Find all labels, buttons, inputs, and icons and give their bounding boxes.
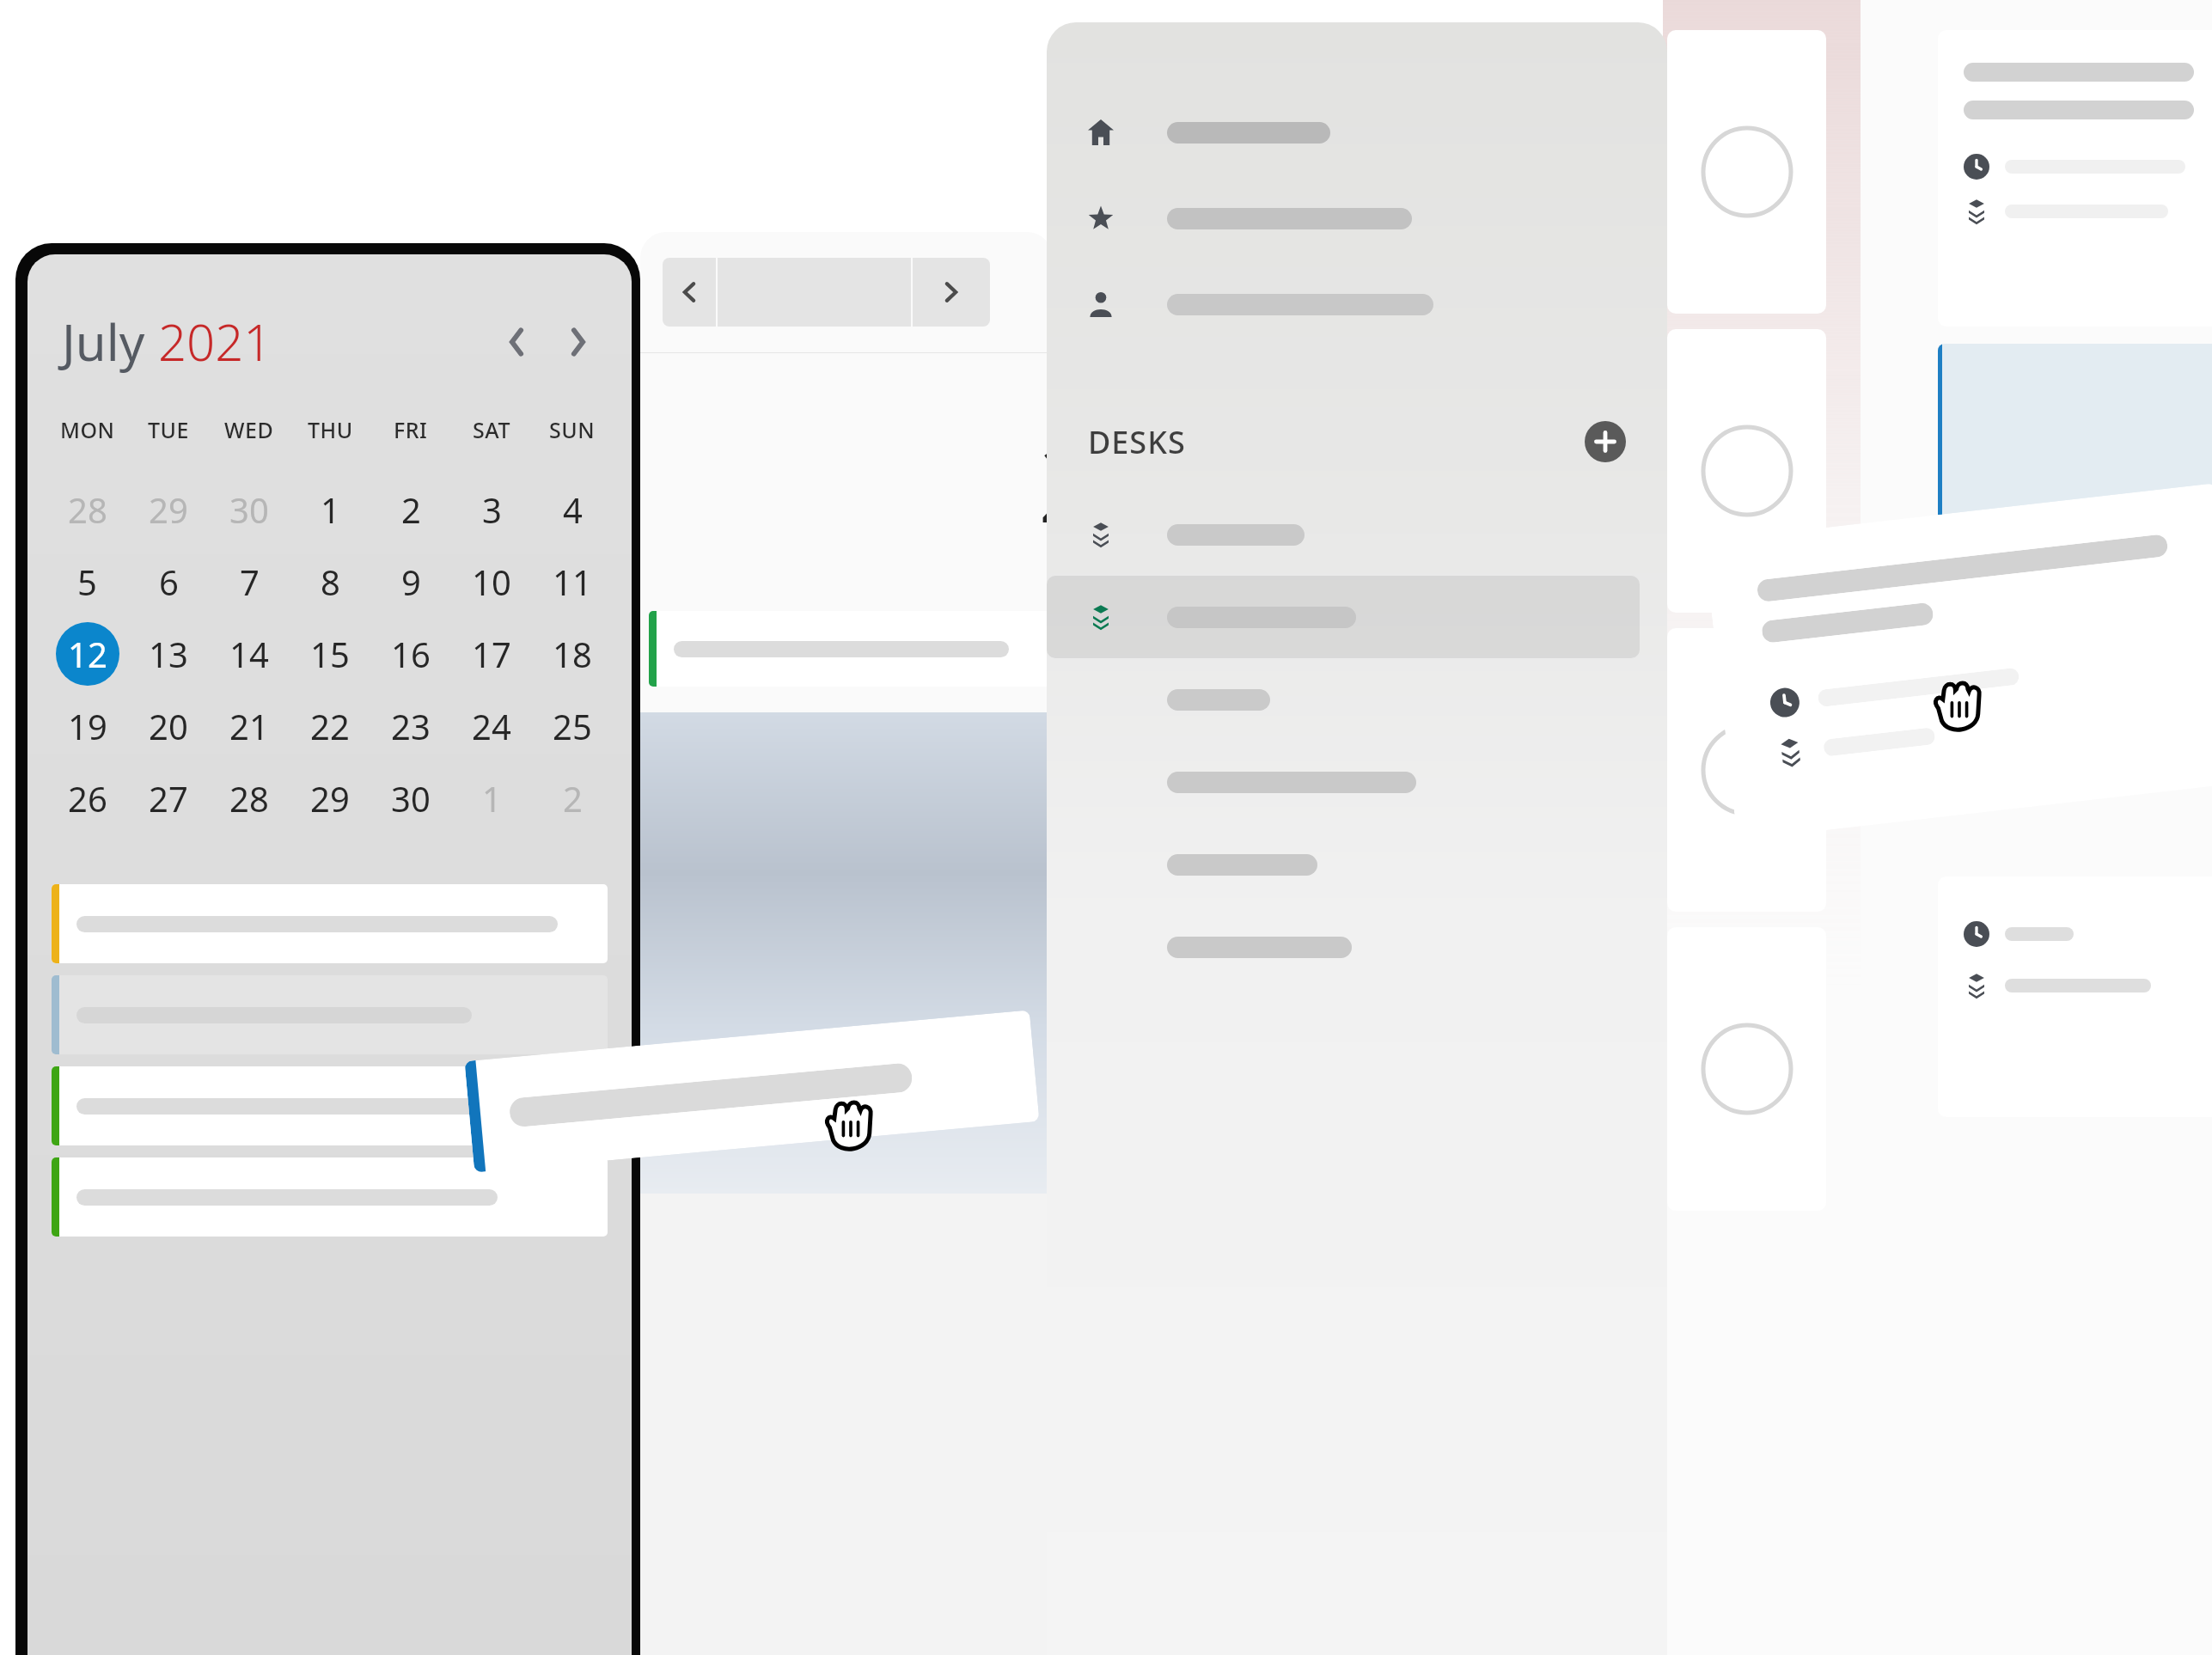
button[interactable]: 25 — [532, 690, 613, 762]
staticText: 23 — [391, 703, 431, 749]
button[interactable]: 6 — [128, 546, 209, 618]
staticText: 7 — [240, 559, 260, 605]
staticText: TUE — [148, 415, 189, 444]
button[interactable] — [1703, 483, 2212, 840]
staticText: 5 — [77, 559, 97, 605]
button[interactable]: 8 — [290, 546, 370, 618]
button[interactable]: Profile — [1047, 261, 1667, 347]
button[interactable]: Home — [1047, 89, 1667, 175]
staticText: 2021 — [158, 308, 272, 376]
staticText: 25 — [553, 703, 592, 749]
staticText: July — [62, 308, 158, 376]
button[interactable] — [1938, 344, 2212, 602]
button[interactable] — [1047, 741, 1667, 823]
staticText: 28 — [68, 486, 107, 533]
button[interactable]: Add desk — [1585, 421, 1626, 462]
button[interactable] — [52, 1066, 608, 1145]
staticText: 16 — [391, 631, 431, 677]
button[interactable] — [1047, 906, 1667, 988]
button[interactable]: 3 — [451, 473, 532, 546]
button[interactable]: Previous — [663, 258, 716, 327]
staticText: 1 — [482, 775, 502, 821]
staticText: 18 — [553, 631, 592, 677]
button[interactable]: 30 — [209, 473, 290, 546]
staticText: 3 — [482, 486, 502, 533]
button[interactable] — [52, 1157, 608, 1237]
button[interactable]: 30 — [370, 762, 451, 834]
staticText: SUN — [549, 415, 596, 444]
button[interactable]: 28 — [46, 473, 128, 546]
button[interactable]: 4 — [532, 473, 613, 546]
button[interactable] — [464, 1010, 1039, 1173]
button[interactable]: 1 — [451, 762, 532, 834]
button[interactable]: 16 — [370, 618, 451, 690]
button[interactable]: 14 — [209, 618, 290, 690]
button[interactable]: 17 — [451, 618, 532, 690]
button[interactable]: 29 — [128, 473, 209, 546]
button[interactable]: 27 — [128, 762, 209, 834]
staticText: 2 — [401, 486, 421, 533]
button[interactable]: 9 — [370, 546, 451, 618]
button[interactable]: 23 — [370, 690, 451, 762]
button[interactable]: Next month — [554, 318, 602, 366]
staticText: 24 — [472, 703, 511, 749]
button[interactable]: Favourites — [1047, 175, 1667, 261]
button[interactable] — [52, 884, 608, 963]
button[interactable]: Current desk — [1047, 576, 1667, 658]
button[interactable]: 11 — [532, 546, 613, 618]
staticText: 17 — [472, 631, 511, 677]
staticText: 27 — [149, 775, 188, 821]
staticText: 12 — [68, 631, 107, 677]
button[interactable]: 15 — [290, 618, 370, 690]
staticText: 30 — [229, 486, 269, 533]
button[interactable] — [649, 611, 1053, 687]
button[interactable] — [1667, 30, 1826, 314]
staticText: 20 — [149, 703, 188, 749]
staticText: 10 — [472, 559, 511, 605]
staticText: 22 — [310, 703, 350, 749]
staticText: MON — [60, 415, 115, 444]
button[interactable]: 7 — [209, 546, 290, 618]
button[interactable]: 2 — [532, 762, 613, 834]
button[interactable] — [52, 975, 608, 1054]
button[interactable] — [1047, 658, 1667, 741]
button[interactable]: 28 — [209, 762, 290, 834]
staticText: 6 — [159, 559, 179, 605]
button[interactable] — [1667, 628, 1826, 912]
staticText: WED — [224, 415, 274, 444]
button[interactable]: 19 — [46, 690, 128, 762]
staticText: 1 — [321, 486, 340, 533]
button[interactable]: 10 — [451, 546, 532, 618]
button[interactable]: 24 — [451, 690, 532, 762]
staticText: THU — [308, 415, 353, 444]
button[interactable] — [1667, 329, 1826, 613]
staticText: 29 — [149, 486, 188, 533]
button[interactable]: 20 — [128, 690, 209, 762]
button[interactable] — [1667, 927, 1826, 1211]
staticText: DESKS — [1088, 421, 1186, 463]
button[interactable]: 5 — [46, 546, 128, 618]
staticText: 28 — [229, 775, 269, 821]
button[interactable] — [1938, 876, 2212, 1117]
button[interactable] — [1938, 30, 2212, 327]
button[interactable]: Desk — [1047, 493, 1667, 576]
staticText: 2 — [563, 775, 583, 821]
button[interactable]: 2 — [370, 473, 451, 546]
button[interactable]: 26 — [46, 762, 128, 834]
staticText: FRI — [394, 415, 428, 444]
staticText: 26 — [68, 775, 107, 821]
staticText: 15 — [310, 631, 350, 677]
staticText: 14 — [229, 631, 269, 677]
staticText: 9 — [401, 559, 421, 605]
button[interactable]: 29 — [290, 762, 370, 834]
button[interactable]: Previous month — [492, 318, 541, 366]
button[interactable]: 18 — [532, 618, 613, 690]
button[interactable]: 22 — [290, 690, 370, 762]
button[interactable]: Next — [913, 258, 990, 327]
button[interactable]: 1 — [290, 473, 370, 546]
button[interactable]: 13 — [128, 618, 209, 690]
button[interactable]: 21 — [209, 690, 290, 762]
button[interactable] — [1047, 823, 1667, 906]
button[interactable]: 12 — [46, 618, 128, 690]
